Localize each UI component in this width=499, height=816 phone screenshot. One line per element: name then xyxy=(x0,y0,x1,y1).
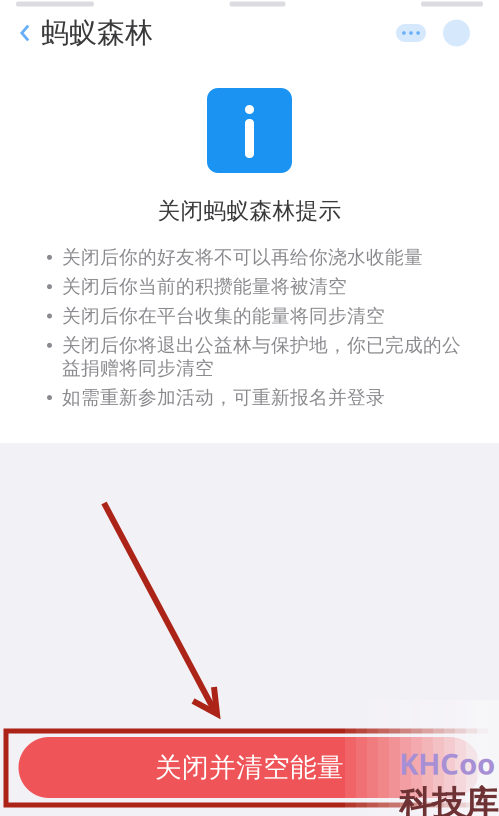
staticText: 科技库 xyxy=(399,783,498,816)
staticText: 关闭后你将退出公益林与保护地，你已完成的公益捐赠将同步清空 xyxy=(62,334,461,380)
staticText: 关闭后你在平台收集的能量将同步清空 xyxy=(62,304,385,327)
staticText: 关闭后你当前的积攒能量将被清空 xyxy=(62,275,347,298)
button[interactable]: Close xyxy=(443,19,470,46)
staticText: KHCoo xyxy=(399,744,495,783)
staticText: 关闭并清空能量 xyxy=(155,751,344,784)
staticText: 关闭后你的好友将不可以再给你浇水收能量 xyxy=(62,246,423,269)
staticText: 如需重新参加活动，可重新报名并登录 xyxy=(62,386,385,409)
button[interactable]: 蚂蚁森林 xyxy=(0,12,163,54)
button[interactable]: 关闭并清空能量 xyxy=(18,737,480,798)
staticText: 蚂蚁森林 xyxy=(41,16,153,50)
button[interactable]: More xyxy=(396,24,426,42)
staticText: 关闭蚂蚁森林提示 xyxy=(157,197,341,225)
